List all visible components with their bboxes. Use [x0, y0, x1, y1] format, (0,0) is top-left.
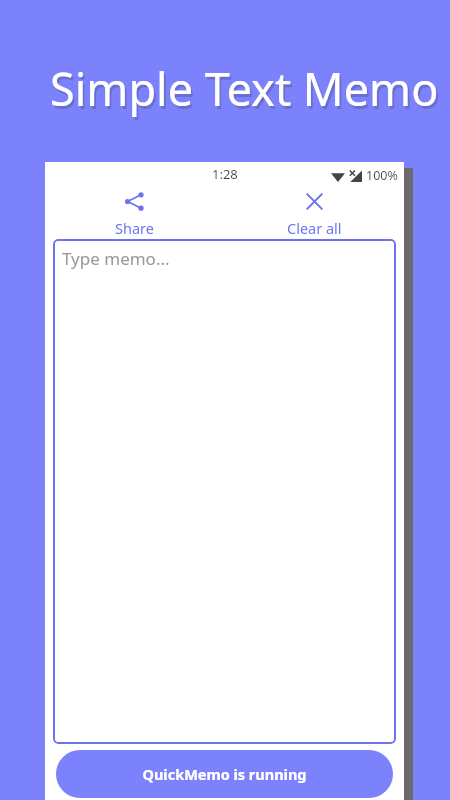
staticText: Simple Text Memo [52, 61, 441, 122]
staticText: 100% [366, 167, 398, 184]
staticText: Clear all [287, 218, 342, 237]
other: Clear all [304, 191, 325, 212]
other: Share [124, 191, 145, 212]
staticText: 1:28 [212, 165, 238, 183]
button[interactable]: Clear all [224, 189, 404, 239]
button[interactable]: Share [45, 189, 224, 239]
staticText: Simple Text Memo [50, 58, 439, 119]
button[interactable]: Type memo... [53, 239, 396, 744]
staticText: Share [115, 218, 154, 237]
button[interactable]: QuickMemo is running [56, 750, 393, 798]
staticText: Type memo... [62, 247, 170, 270]
staticText: QuickMemo is running [142, 764, 307, 784]
